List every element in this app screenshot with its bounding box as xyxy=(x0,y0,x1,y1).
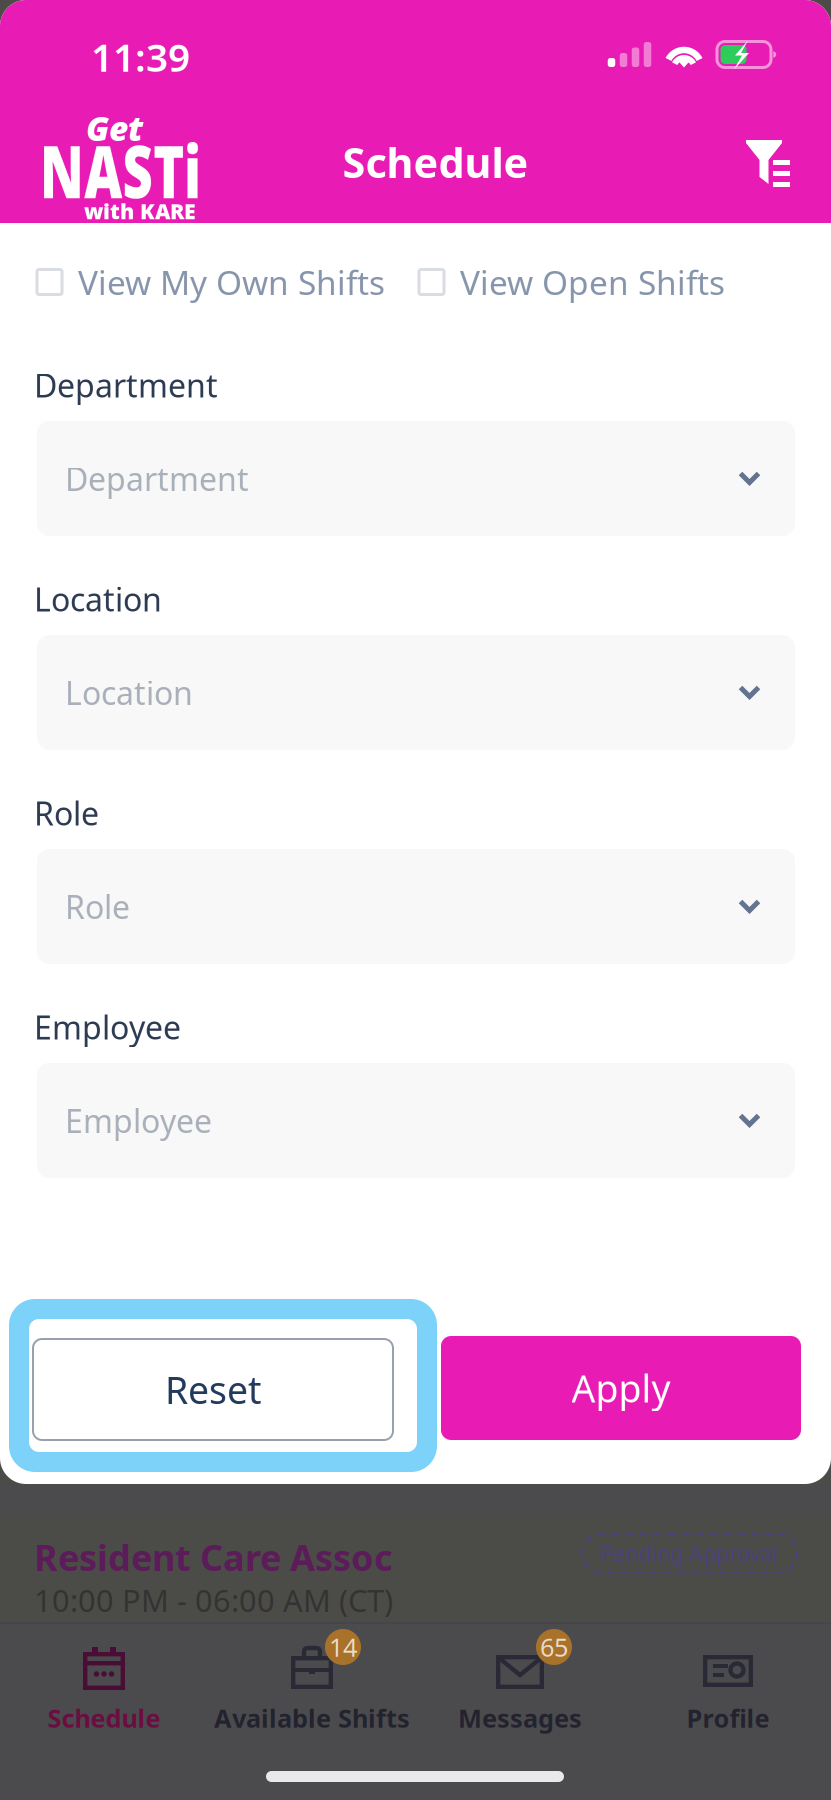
button[interactable]: Filter xyxy=(746,140,790,187)
button[interactable]: View Open Shifts xyxy=(419,260,725,304)
staticText: View My Own Shifts xyxy=(78,260,385,304)
button[interactable]: View My Own Shifts xyxy=(37,260,385,304)
staticText: Get xyxy=(86,106,143,150)
staticText: Schedule xyxy=(342,135,528,189)
staticText: Available Shifts xyxy=(214,1701,410,1735)
staticText: Location xyxy=(65,671,193,714)
staticText: Department xyxy=(65,457,249,500)
button[interactable]: Employee xyxy=(37,1063,795,1178)
staticText: 11:39 xyxy=(91,31,190,82)
button[interactable]: 14 xyxy=(208,1622,416,1742)
staticText: 10:00 PM - 06:00 AM (CT) xyxy=(34,1580,393,1620)
button[interactable]: Department xyxy=(37,421,795,536)
staticText: NASTi xyxy=(40,127,208,199)
staticText: Profile xyxy=(686,1701,769,1735)
staticText: with KARE xyxy=(84,197,196,225)
staticText: Role xyxy=(65,885,130,928)
staticText: 14 xyxy=(329,1630,357,1664)
staticText: Apply xyxy=(571,1363,670,1413)
staticText: Role xyxy=(34,792,99,834)
button[interactable]: Profile xyxy=(624,1622,831,1742)
staticText: Employee xyxy=(65,1099,212,1142)
staticText: Department xyxy=(34,364,218,406)
button[interactable]: Schedule xyxy=(0,1622,208,1742)
staticText: Employee xyxy=(34,1006,181,1048)
staticText: 65 xyxy=(540,1630,568,1664)
button[interactable]: Location xyxy=(37,635,795,750)
button[interactable]: Reset xyxy=(9,1299,437,1472)
staticText: Location xyxy=(34,578,162,620)
staticText: Messages xyxy=(458,1701,582,1735)
button[interactable]: Apply xyxy=(441,1336,801,1440)
button[interactable]: Role xyxy=(37,849,795,964)
button[interactable]: 65 xyxy=(416,1622,624,1742)
staticText: Pending Approval xyxy=(600,1539,778,1568)
staticText: View Open Shifts xyxy=(460,260,725,304)
staticText: Reset xyxy=(165,1365,261,1414)
staticText: Resident Care Assoc xyxy=(34,1533,393,1581)
staticText: Schedule xyxy=(47,1701,160,1735)
